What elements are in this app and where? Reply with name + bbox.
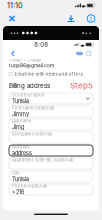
staticText: Tunisia [12,176,29,183]
staticText: Jimmy [12,111,29,118]
staticText: Jimg [12,124,24,131]
button[interactable]: Info [84,11,98,25]
staticText: Address [12,144,29,149]
staticText: ••• [10,30,19,36]
staticText: Country/region [12,92,45,97]
staticText: Tunisia [12,98,29,105]
button[interactable]: Save [64,11,78,25]
button[interactable]: Close [4,11,20,25]
staticText: i [90,14,92,23]
staticText: address [12,150,32,157]
staticText: tuqa86@gmail.com [9,62,54,68]
staticText: 8:08 [34,41,48,48]
staticText: Company (optional) [12,131,53,136]
staticText: City [12,170,19,175]
staticText: Last name [12,118,31,123]
staticText: Email me with news and offers [14,71,82,77]
staticText: Apartment, suite, etc. (optional) [12,157,74,162]
staticText: Step5 [70,81,93,90]
staticText: 11:10 [7,1,23,10]
staticText: Contact • Change [9,58,41,62]
staticText: +216 [12,189,26,196]
staticText: Phone (optional) [12,183,48,188]
staticText: Billing address [9,82,50,89]
staticText: First name (optional) [12,105,55,110]
staticText: ▾ ▪ ▪ [82,30,92,36]
